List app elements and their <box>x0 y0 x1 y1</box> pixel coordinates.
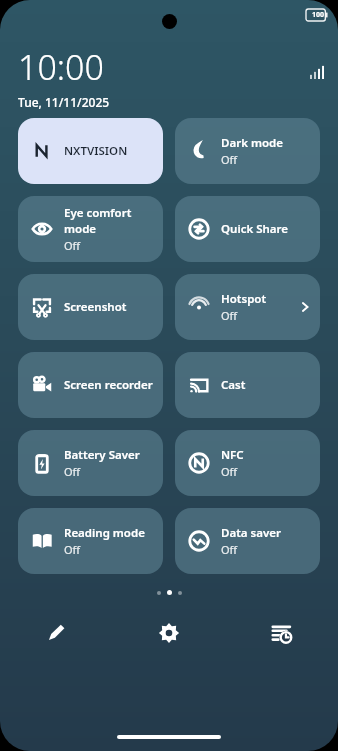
button[interactable]: Screenshot <box>18 274 163 340</box>
staticText: NXTVISION <box>64 143 128 159</box>
staticText: Off <box>221 542 238 557</box>
staticText: Reading mode <box>64 525 145 541</box>
staticText: Cast <box>221 377 246 393</box>
button[interactable]: Battery Saver <box>18 430 163 496</box>
staticText: Off <box>221 152 238 167</box>
staticText: Off <box>64 542 81 557</box>
staticText: Eye comfort mode <box>64 205 155 237</box>
staticText: 100 <box>312 10 325 20</box>
staticText: Off <box>221 308 238 323</box>
button[interactable]: Reading mode <box>18 508 163 574</box>
button[interactable]: Dark mode <box>175 118 320 184</box>
button[interactable]: Cast <box>175 352 320 418</box>
button[interactable]: History <box>225 612 338 654</box>
button[interactable]: Hotspot <box>175 274 320 340</box>
staticText: 10:00 <box>18 44 104 90</box>
button[interactable]: Data saver <box>175 508 320 574</box>
staticText: Screenshot <box>64 299 127 315</box>
staticText: Battery Saver <box>64 447 140 463</box>
staticText: Off <box>64 464 81 479</box>
staticText: Quick Share <box>221 221 289 237</box>
button[interactable]: Settings <box>112 612 225 654</box>
staticText: NFC <box>221 447 244 463</box>
button[interactable]: Screen recorder <box>18 352 163 418</box>
staticText: Hotspot <box>221 291 267 307</box>
button[interactable]: Eye comfort mode <box>18 196 163 262</box>
staticText: Data saver <box>221 525 281 541</box>
staticText: Off <box>221 464 238 479</box>
staticText: Off <box>64 238 81 253</box>
button[interactable]: Quick Share <box>175 196 320 262</box>
staticText: Screen recorder <box>64 377 153 393</box>
staticText: Dark mode <box>221 135 283 151</box>
button[interactable]: Edit <box>0 612 112 654</box>
button[interactable]: NFC <box>175 430 320 496</box>
staticText: Tue, 11/11/2025 <box>18 94 110 110</box>
button[interactable]: NXTVISION <box>18 118 163 184</box>
